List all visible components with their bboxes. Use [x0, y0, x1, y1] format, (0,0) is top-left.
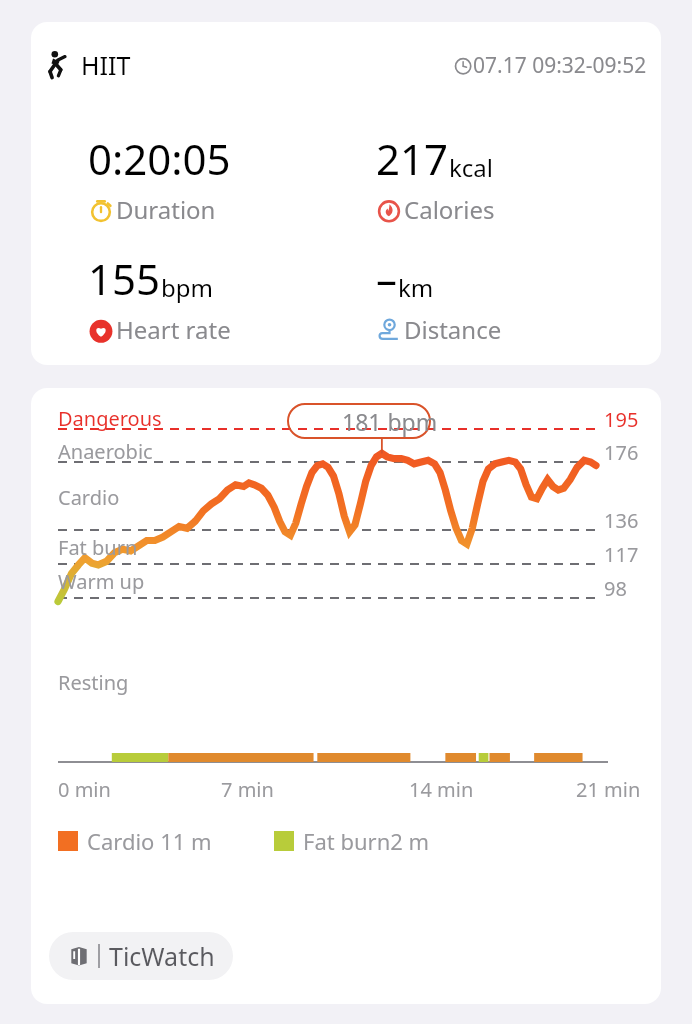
staticText: 155 — [88, 250, 161, 307]
staticText: 181 bpm — [342, 406, 438, 437]
staticText: 136 — [604, 507, 639, 534]
staticText: 176 — [604, 439, 639, 466]
staticText: HIIT — [81, 48, 131, 82]
staticText: kcal — [449, 151, 493, 184]
staticText: Anaerobic — [58, 438, 153, 465]
button[interactable]: 0:20:05 — [88, 130, 231, 226]
staticText: bpm — [161, 271, 213, 304]
staticText: Cardio 11 m — [87, 826, 212, 856]
button[interactable]: 155 — [88, 250, 231, 346]
staticText: Distance — [404, 313, 502, 346]
staticText: Fat burn — [58, 534, 138, 561]
staticText: 217 — [376, 130, 449, 187]
staticText: – — [376, 250, 398, 307]
button[interactable]: TicWatch — [49, 932, 233, 980]
staticText: 0 min — [58, 776, 111, 803]
staticText: Calories — [404, 193, 495, 226]
staticText: 0:20:05 — [88, 130, 231, 187]
staticText: Dangerous — [58, 405, 162, 432]
button[interactable]: 217 — [376, 130, 495, 226]
staticText: 07.17 09:32-09:52 — [473, 51, 647, 80]
staticText: 117 — [604, 541, 639, 568]
staticText: 98 — [604, 575, 627, 602]
button[interactable]: – — [376, 250, 502, 346]
staticText: Cardio — [58, 484, 120, 511]
staticText: Warm up — [58, 568, 145, 595]
staticText: Fat burn2 m — [303, 826, 430, 856]
staticText: km — [398, 271, 434, 304]
button[interactable]: 181 bpm — [319, 404, 461, 438]
staticText: 14 min — [409, 776, 474, 803]
staticText: Resting — [58, 669, 129, 696]
staticText: 195 — [604, 406, 639, 433]
staticText: Duration — [116, 193, 216, 226]
staticText: TicWatch — [109, 939, 215, 973]
staticText: 21 min — [576, 776, 641, 803]
staticText: 7 min — [221, 776, 274, 803]
staticText: Heart rate — [116, 313, 231, 346]
